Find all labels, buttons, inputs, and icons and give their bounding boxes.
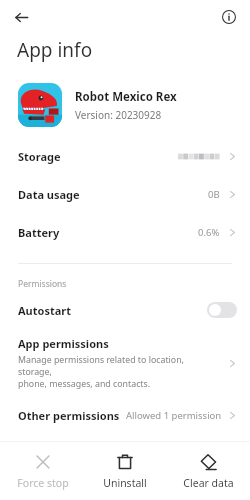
staticText: Battery	[18, 225, 60, 240]
staticText: Autostart	[18, 303, 71, 318]
staticText: Other permissions	[18, 408, 120, 423]
staticText: Version: 20230928	[75, 108, 162, 122]
staticText: Manage permissions related to location, …	[18, 354, 220, 390]
button[interactable]: App permissions	[0, 328, 250, 398]
staticText: Allowed 1 permission	[126, 409, 222, 422]
button[interactable]: Force stop	[3, 449, 83, 494]
staticText: 0.6%	[198, 226, 220, 239]
button[interactable]: Clear data	[168, 449, 248, 494]
button[interactable]: Uninstall	[85, 449, 165, 494]
staticText: Clear data	[183, 476, 234, 490]
staticText: Force stop	[17, 476, 69, 490]
staticText: Storage	[18, 149, 61, 164]
staticText: Uninstall	[103, 476, 147, 490]
button[interactable]: Autostart	[0, 292, 250, 328]
button[interactable]: Autostart toggle	[207, 302, 237, 318]
button[interactable]: Storage	[0, 137, 250, 175]
button[interactable]: App details	[216, 4, 242, 30]
button[interactable]: Other permissions	[0, 398, 250, 432]
button[interactable]: Back	[8, 4, 34, 30]
staticText: Data usage	[18, 187, 80, 202]
staticText: 0B	[208, 188, 220, 201]
staticText: Robot Mexico Rex	[75, 89, 177, 105]
button[interactable]: Battery	[0, 213, 250, 251]
staticText: App permissions	[18, 336, 109, 351]
staticText: App info	[17, 37, 93, 63]
staticText: Permissions	[18, 278, 67, 290]
button[interactable]: Data usage	[0, 175, 250, 213]
